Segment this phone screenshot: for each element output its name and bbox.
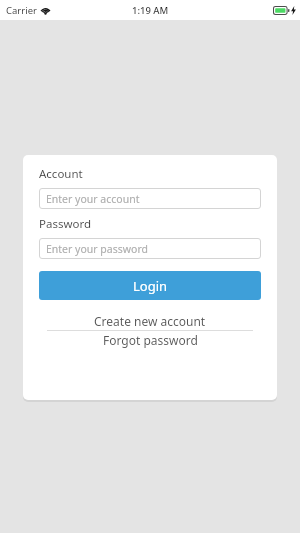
staticText: Enter your password <box>46 242 148 256</box>
staticText: 1:19 AM <box>132 4 169 17</box>
button[interactable]: Enter your account <box>39 188 261 209</box>
button[interactable]: Forgot password <box>39 331 261 349</box>
staticText: Carrier <box>6 4 37 17</box>
staticText: Password <box>39 216 92 232</box>
button[interactable]: Create new account <box>39 312 261 330</box>
button[interactable]: Login <box>39 271 261 300</box>
staticText: Login <box>133 277 168 295</box>
staticText: Enter your account <box>46 192 140 206</box>
staticText: Forgot password <box>103 332 198 348</box>
staticText: Create new account <box>94 313 206 329</box>
staticText: Account <box>39 166 83 182</box>
button[interactable]: Enter your password <box>39 238 261 259</box>
